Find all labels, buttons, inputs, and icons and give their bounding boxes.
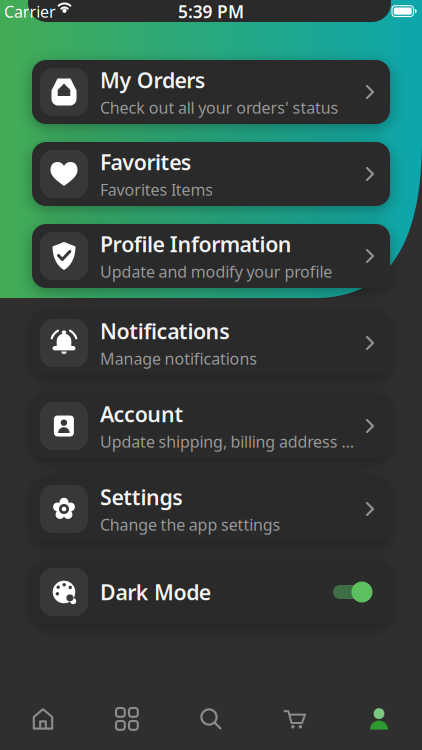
staticText: Change the app settings — [100, 514, 281, 535]
button[interactable]: Home — [1, 691, 85, 747]
button[interactable]: Settings — [32, 477, 390, 541]
button[interactable]: Profile — [337, 691, 421, 747]
staticText: Update and modify your profile — [100, 261, 332, 282]
staticText: Favorites — [100, 148, 192, 176]
button[interactable]: Cart — [253, 691, 337, 747]
button[interactable]: Account — [32, 394, 390, 458]
staticText: Check out all your orders' status — [100, 97, 339, 118]
staticText: Favorites Items — [100, 179, 213, 200]
button[interactable]: Search — [169, 691, 253, 747]
staticText: My Orders — [100, 66, 206, 94]
button[interactable]: Dark Mode — [32, 560, 390, 624]
button[interactable]: Favorites — [32, 142, 390, 206]
staticText: Settings — [100, 483, 183, 511]
staticText: Account — [100, 400, 183, 428]
button[interactable]: Categories — [85, 691, 169, 747]
staticText: Carrier — [4, 1, 56, 22]
staticText: Profile Information — [100, 230, 292, 258]
button[interactable]: My Orders — [32, 60, 390, 124]
staticText: Notifications — [100, 317, 230, 345]
staticText: Manage notifications — [100, 348, 257, 369]
staticText: 5:39 PM — [178, 0, 244, 23]
button[interactable]: Profile Information — [32, 224, 390, 288]
staticText: Dark Mode — [100, 578, 211, 606]
button[interactable]: Notifications — [32, 311, 390, 375]
staticText: Update shipping, billing address and muc… — [100, 431, 356, 452]
